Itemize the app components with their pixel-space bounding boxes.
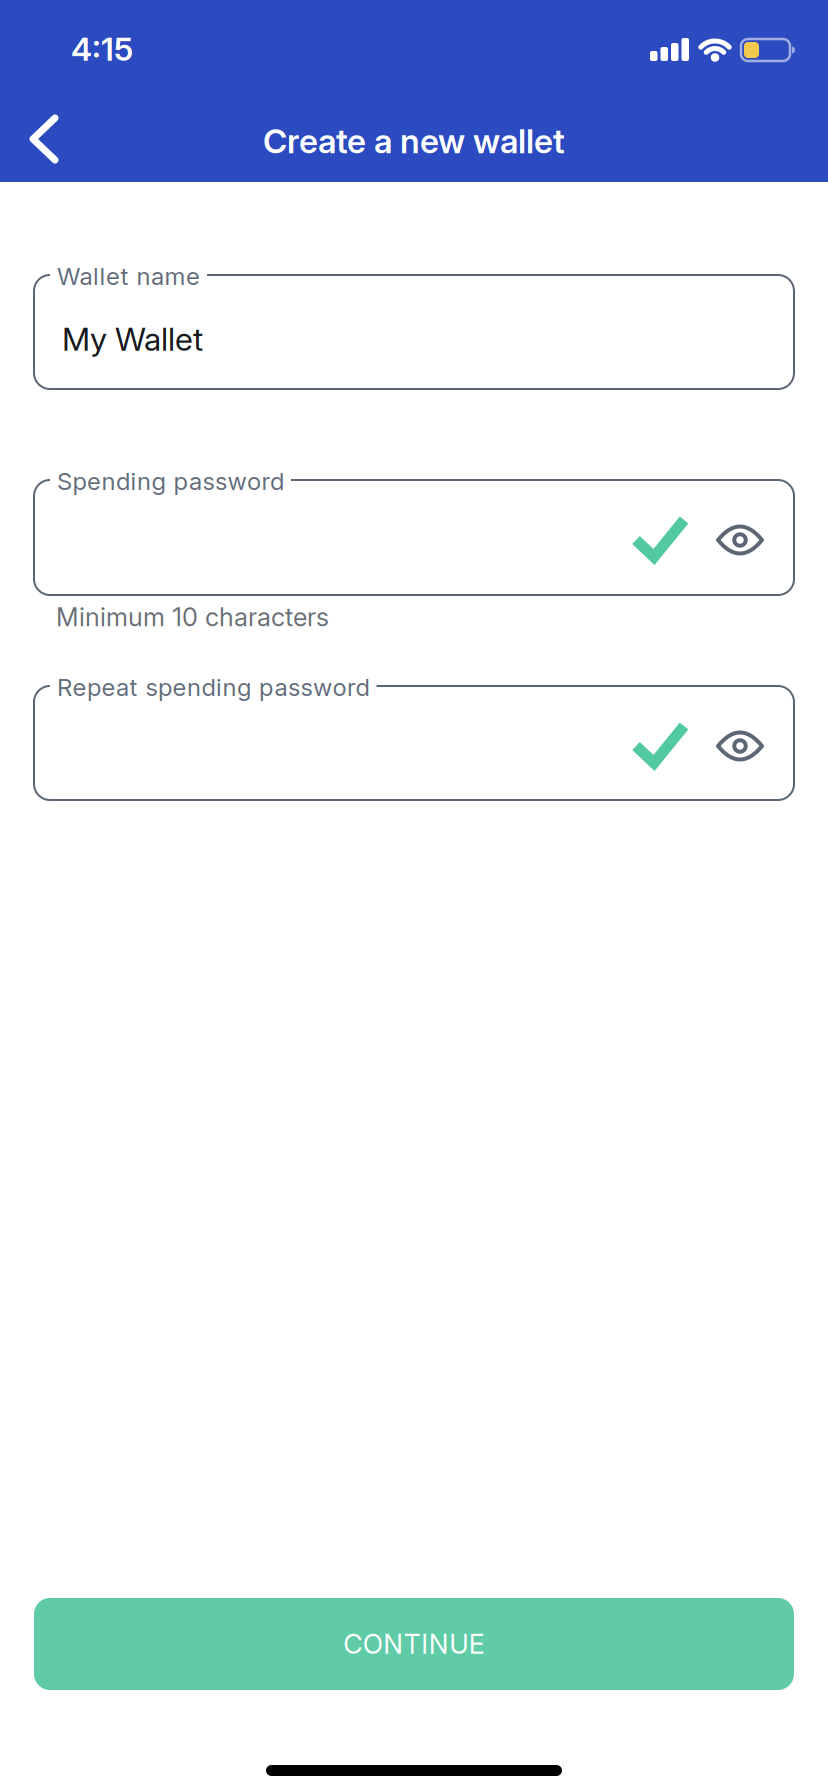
staticText: Minimum 10 characters (56, 602, 329, 632)
staticText: My Wallet (62, 320, 203, 358)
button[interactable]: Spending password (34, 480, 794, 595)
staticText: Wallet name (57, 262, 200, 290)
button[interactable]: CONTINUE (34, 1598, 794, 1690)
button[interactable]: Show password (0, 0, 828, 1792)
staticText: Spending password (57, 467, 284, 495)
button[interactable]: Back (0, 0, 828, 182)
button[interactable]: Wallet name (34, 275, 794, 389)
staticText: Repeat spending password (57, 673, 369, 701)
staticText: CONTINUE (343, 1628, 485, 1660)
button[interactable]: Show password (0, 0, 828, 1792)
button[interactable]: Repeat spending password (34, 686, 794, 800)
staticText: 4:15 (71, 30, 133, 68)
staticText: Create a new wallet (263, 121, 565, 161)
